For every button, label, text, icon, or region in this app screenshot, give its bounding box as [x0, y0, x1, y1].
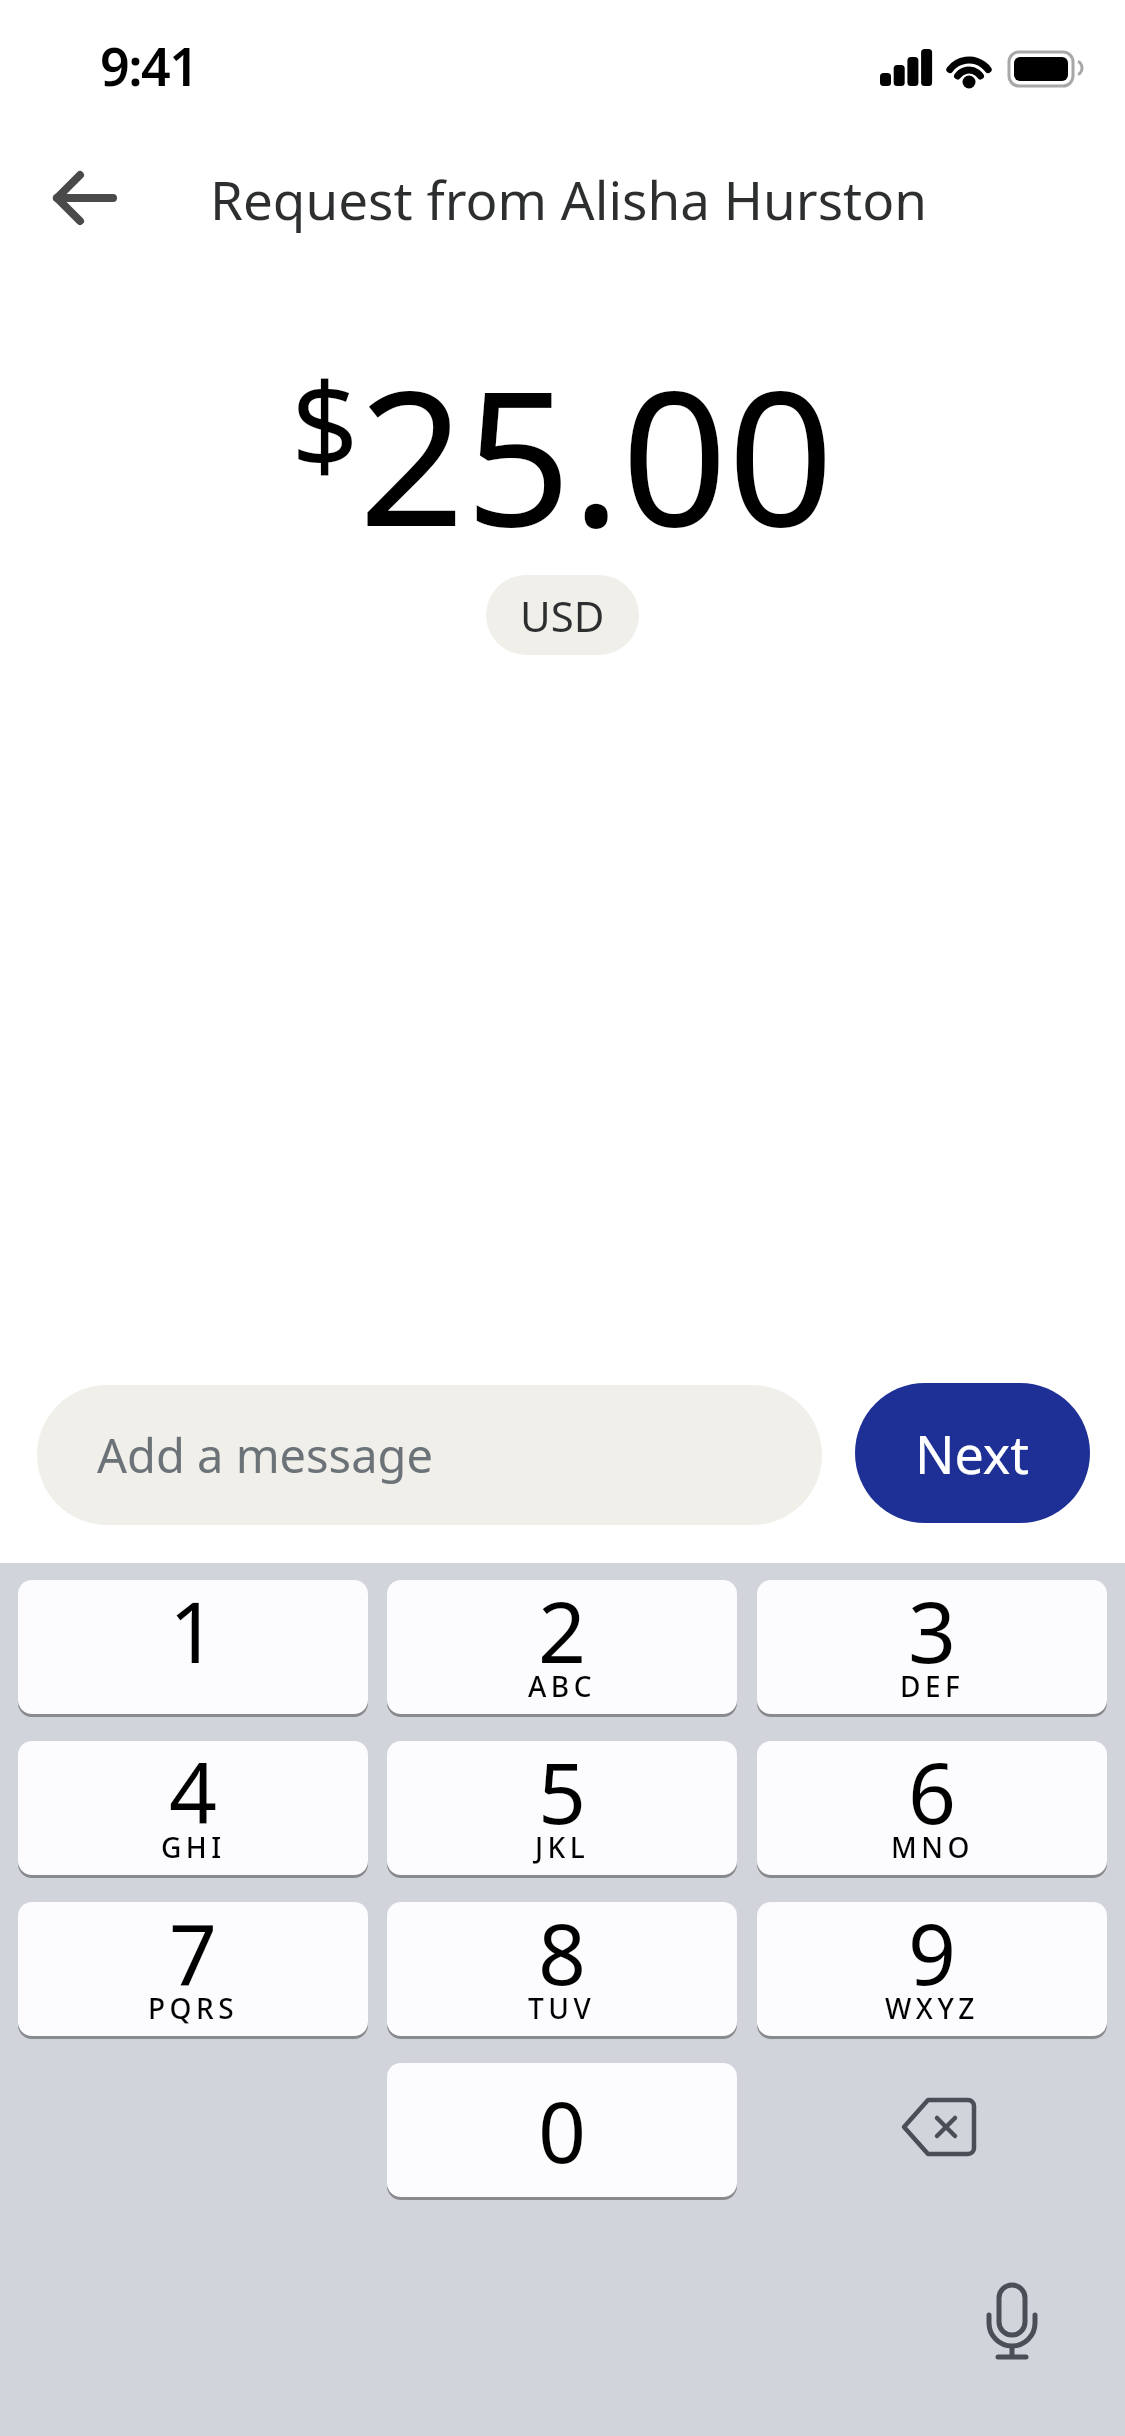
staticText: GHI [161, 1828, 226, 1866]
staticText: ABC [528, 1667, 596, 1705]
staticText: 4 [169, 1741, 218, 1848]
button[interactable] [37, 150, 132, 245]
staticText: Request from Alisha Hurston [210, 163, 927, 235]
button[interactable]: 5 [387, 1741, 737, 1875]
staticText: DEF [900, 1667, 965, 1705]
button[interactable]: Next [855, 1383, 1090, 1523]
staticText: WXYZ [885, 1989, 979, 2027]
staticText: 1 [169, 1580, 218, 1687]
staticText: 9:41 [100, 30, 198, 101]
button[interactable]: 9 [757, 1902, 1107, 2036]
staticText: Next [915, 1418, 1030, 1489]
staticText: 5 [538, 1741, 587, 1848]
staticText: USD [520, 587, 605, 644]
button[interactable] [904, 2096, 976, 2158]
staticText: 3 [908, 1580, 957, 1687]
staticText: 2 [538, 1580, 587, 1687]
button[interactable] [986, 2283, 1038, 2363]
button[interactable]: 6 [757, 1741, 1107, 1875]
button[interactable]: Add a message [37, 1385, 822, 1525]
button[interactable]: 8 [387, 1902, 737, 2036]
button[interactable]: 1 [18, 1580, 368, 1714]
button[interactable]: 3 [757, 1580, 1107, 1714]
staticText: JKL [535, 1828, 590, 1866]
button[interactable]: 4 [18, 1741, 368, 1875]
staticText: 0 [538, 2073, 587, 2187]
staticText: TUV [528, 1989, 596, 2027]
staticText: 6 [908, 1741, 957, 1848]
staticText: MNO [891, 1828, 974, 1866]
button[interactable]: USD [486, 575, 639, 655]
staticText: $25.00 [291, 327, 834, 580]
staticText: Add a message [97, 1423, 433, 1487]
button[interactable]: 0 [387, 2063, 737, 2197]
staticText: PQRS [148, 1989, 239, 2027]
button[interactable]: 7 [18, 1902, 368, 2036]
staticText: 9 [908, 1902, 957, 2009]
button[interactable]: 2 [387, 1580, 737, 1714]
staticText: 7 [169, 1902, 218, 2009]
staticText: 8 [538, 1902, 587, 2009]
